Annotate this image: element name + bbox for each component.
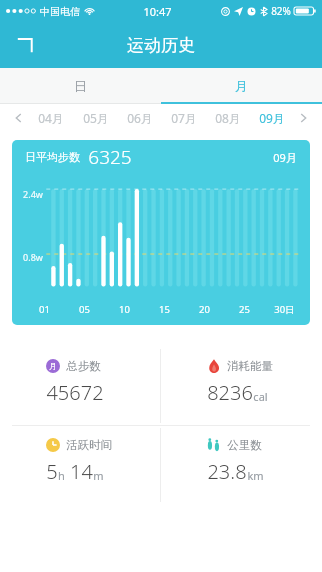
staticText: 5 (46, 458, 58, 485)
staticText: 15 (159, 303, 170, 316)
button[interactable]: Previous (10, 109, 28, 127)
staticText: h (58, 468, 65, 483)
button[interactable]: 06月 (118, 104, 162, 132)
staticText: 05月 (83, 110, 109, 126)
staticText: 01 (39, 303, 50, 316)
staticText: 总步数 (66, 359, 101, 373)
staticText: 6325 (88, 144, 132, 170)
button[interactable]: 07月 (162, 104, 206, 132)
staticText: 45672 (46, 379, 104, 406)
staticText: 月 (235, 78, 248, 94)
staticText: 20 (199, 303, 210, 316)
staticText: 月 (49, 361, 57, 371)
staticText: 中国电信 (40, 5, 80, 18)
staticText: 07月 (171, 110, 197, 126)
staticText: 0.8w (23, 251, 43, 263)
button[interactable]: Back (8, 28, 42, 62)
staticText: 23.8 (207, 458, 247, 485)
button[interactable]: 05月 (73, 104, 118, 132)
button[interactable]: 04月 (28, 104, 73, 132)
staticText: 30日 (274, 303, 295, 316)
staticText: 10 (119, 303, 130, 316)
staticText: 活跃时间 (66, 438, 112, 452)
staticText: 10:47 (143, 4, 172, 19)
staticText: 06月 (127, 110, 153, 126)
staticText: 09月 (273, 150, 297, 165)
staticText: 消耗能量 (227, 359, 273, 373)
button[interactable]: 日平均步数 (12, 140, 310, 325)
staticText: 2.4w (23, 188, 43, 200)
staticText: m (93, 468, 104, 483)
staticText: 公里数 (227, 438, 262, 452)
staticText: 09月 (259, 110, 285, 126)
staticText: cal (253, 389, 268, 404)
staticText: 8236 (207, 379, 253, 406)
staticText: km (247, 468, 264, 483)
staticText: 04月 (38, 110, 64, 126)
staticText: 14 (70, 458, 93, 485)
button[interactable]: 消耗能量 (161, 347, 322, 425)
staticText: 05 (79, 303, 90, 316)
button[interactable]: 月 (161, 68, 322, 104)
staticText: 82% (271, 4, 291, 18)
staticText: 日 (74, 78, 87, 94)
button[interactable]: Next (294, 109, 312, 127)
staticText: 08月 (215, 110, 241, 126)
staticText: 运动历史 (127, 35, 195, 56)
button[interactable]: 月 (0, 347, 160, 425)
button[interactable]: 08月 (206, 104, 250, 132)
button[interactable]: 活跃时间 (0, 426, 160, 504)
staticText: 25 (239, 303, 250, 316)
button[interactable]: 公里数 (161, 426, 322, 504)
staticText: 日平均步数 (25, 150, 80, 164)
button[interactable]: 日 (0, 68, 161, 104)
button[interactable]: 09月 (250, 104, 294, 132)
